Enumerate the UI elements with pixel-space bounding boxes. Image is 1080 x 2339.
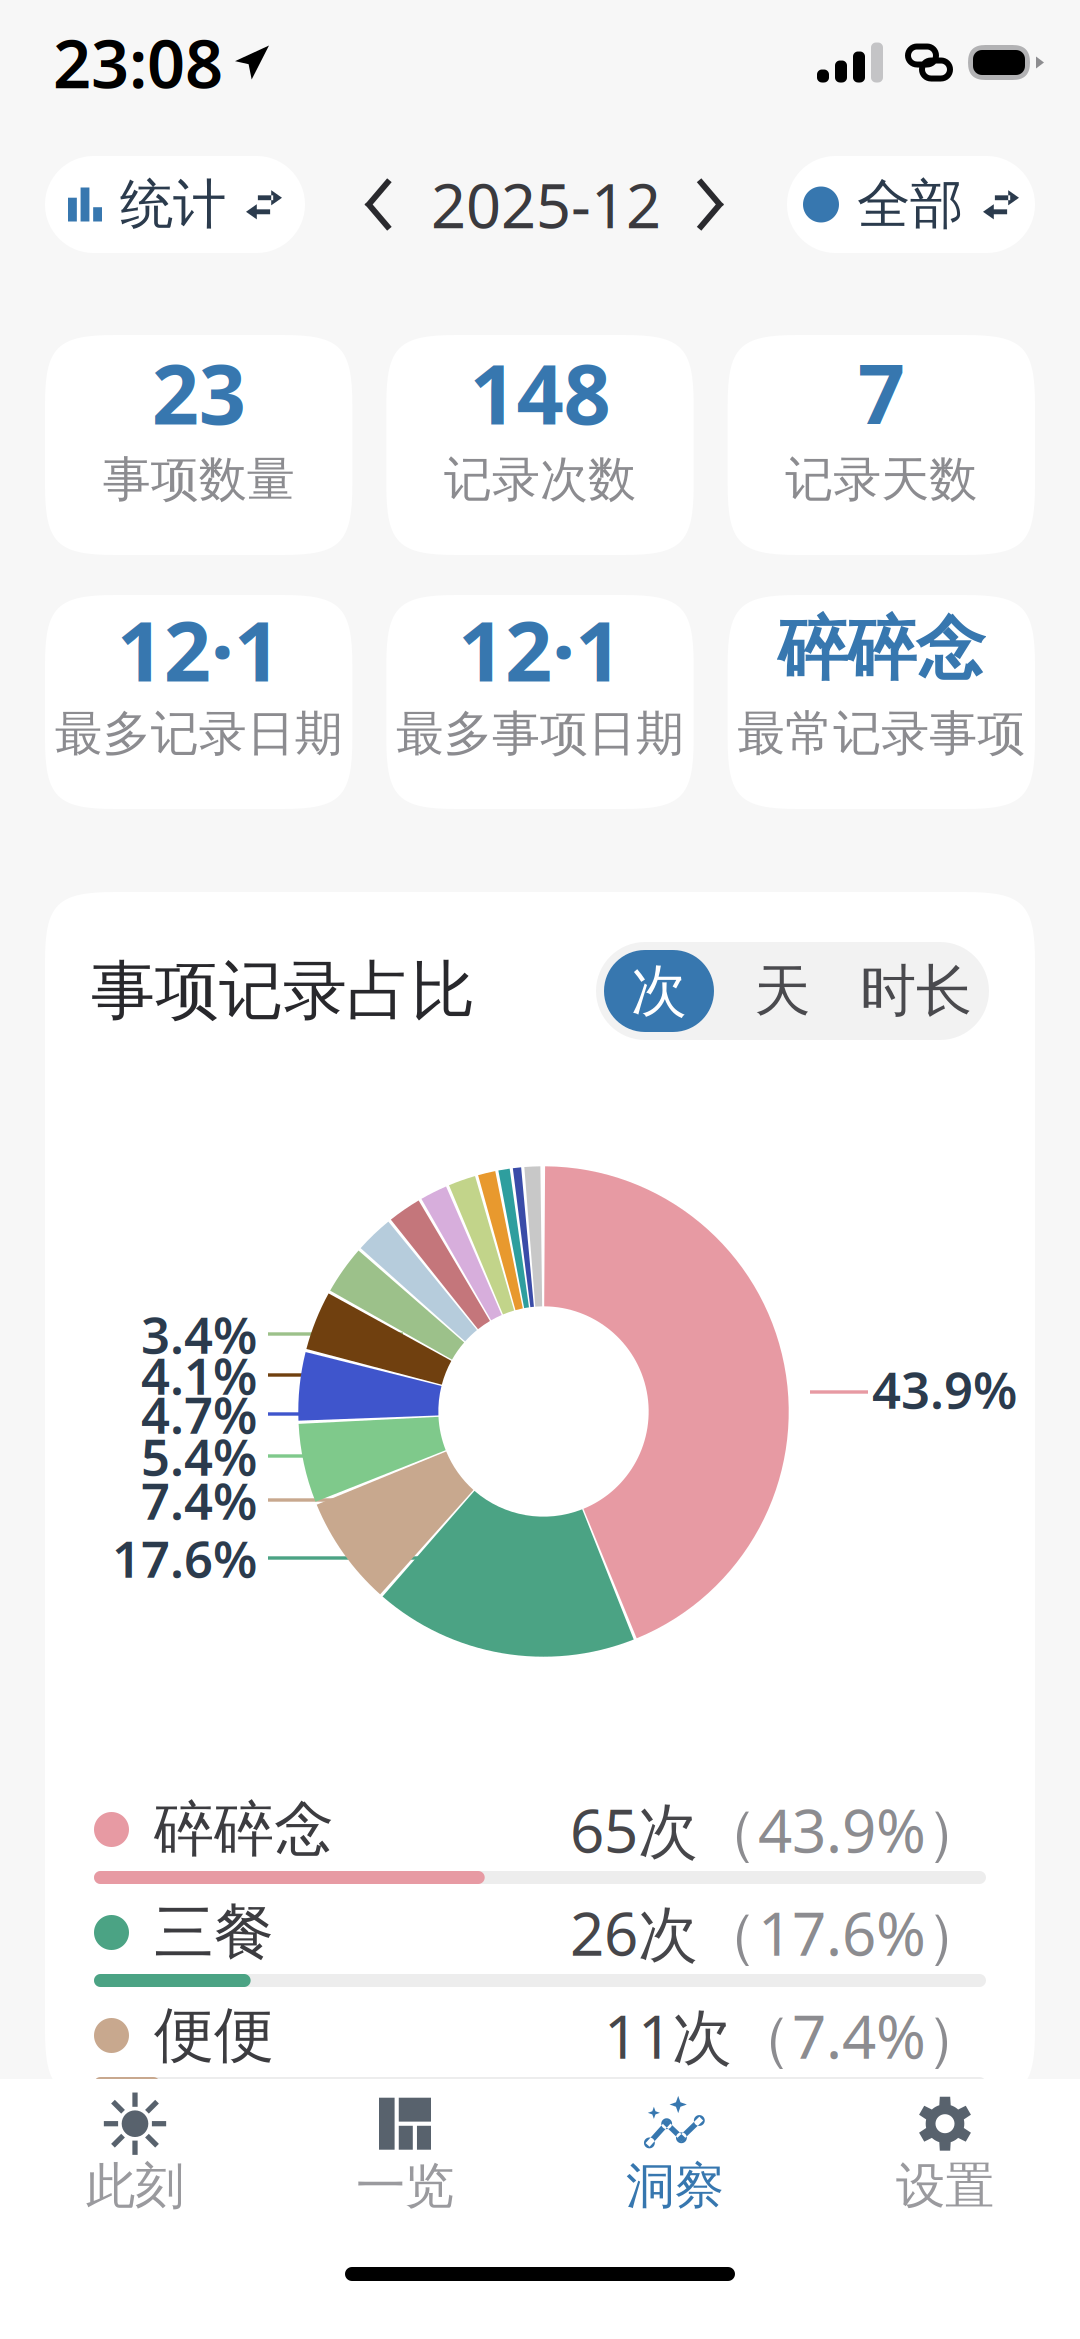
staticText: （17.6%） (698, 1892, 986, 1972)
button[interactable]: 次 (604, 950, 714, 1032)
staticText: 4.1% (141, 1341, 257, 1409)
staticText: 三餐 (154, 1896, 274, 1969)
staticText: （43.9%） (698, 1789, 986, 1869)
staticText: 记录次数 (444, 450, 636, 509)
button[interactable]: 此刻 (0, 2079, 270, 2219)
staticText: 12·1 (117, 595, 281, 704)
button[interactable]: 上个月 (353, 164, 403, 244)
staticText: 便便 (154, 1999, 274, 2072)
button[interactable]: 洞察 (540, 2079, 810, 2219)
button[interactable]: 时长 (851, 950, 981, 1032)
staticText: 3.4% (141, 1300, 257, 1368)
staticText: 7.4% (141, 1466, 257, 1534)
staticText: 23:08 (53, 18, 223, 107)
staticText: 此刻 (86, 2156, 184, 2216)
staticText: 全部 (857, 172, 963, 237)
staticText: 记录天数 (785, 450, 977, 509)
staticText: 11次 (604, 1996, 732, 2075)
button[interactable]: 统计 (45, 156, 305, 253)
button[interactable]: 全部 (787, 156, 1035, 253)
button[interactable]: 一览 (270, 2079, 540, 2219)
staticText: 次 (631, 957, 687, 1025)
staticText: 最多记录日期 (55, 704, 343, 763)
staticText: 65次 (570, 1790, 698, 1869)
staticText: 23 (152, 338, 246, 447)
staticText: （7.4%） (732, 1995, 986, 2075)
button[interactable]: 下个月 (689, 164, 739, 244)
staticText: 12·1 (458, 595, 622, 704)
staticText: 148 (469, 338, 610, 447)
staticText: 最常记录事项 (737, 704, 1025, 763)
staticText: 7 (858, 338, 905, 447)
staticText: 统计 (120, 172, 226, 237)
staticText: 43.9% (872, 1355, 1017, 1423)
staticText: 碎碎念 (154, 1793, 334, 1866)
staticText: 洞察 (626, 2156, 724, 2216)
staticText: 4.7% (141, 1380, 257, 1448)
button[interactable]: 设置 (810, 2079, 1080, 2219)
staticText: 2025-12 (431, 164, 661, 245)
staticText: 时长 (860, 957, 972, 1025)
button[interactable]: 天 (714, 950, 851, 1032)
staticText: 17.6% (112, 1524, 257, 1592)
staticText: 26次 (570, 1893, 698, 1972)
staticText: 设置 (896, 2156, 994, 2216)
staticText: 事项数量 (103, 450, 295, 509)
staticText: 5.4% (141, 1422, 257, 1490)
staticText: 事项记录占比 (91, 952, 475, 1030)
staticText: 最多事项日期 (396, 704, 684, 763)
staticText: 一览 (356, 2156, 454, 2216)
staticText: 天 (754, 957, 810, 1025)
staticText: 碎碎念 (778, 607, 985, 692)
